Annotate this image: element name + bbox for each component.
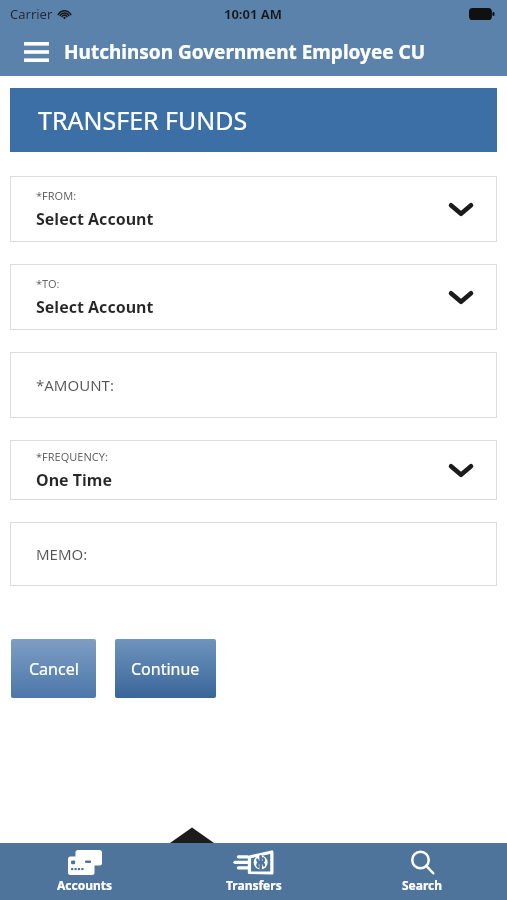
staticText: *AMOUNT: [36,375,114,395]
button[interactable]: MEMO: [10,522,497,586]
button[interactable]: *FROM: [10,176,497,242]
button[interactable]: Search [338,846,507,897]
staticText: 10:01 AM [224,5,283,23]
staticText: Continue [131,658,200,680]
button[interactable]: *AMOUNT: [10,352,497,418]
button[interactable]: *TO: [10,264,497,330]
button[interactable]: Transfers [169,846,338,897]
button[interactable]: Continue [115,639,216,698]
staticText: TRANSFER FUNDS [38,103,248,137]
staticText: One Time [36,469,112,491]
staticText: Select Account [36,296,154,318]
staticText: Cancel [29,658,79,680]
staticText: *FROM: [36,188,77,203]
staticText: Transfers [226,877,282,893]
staticText: *TO: [36,276,60,291]
staticText: Search [402,877,443,893]
staticText: *FREQUENCY: [36,449,108,464]
staticText: Hutchinson Government Employee CU [64,39,426,65]
button[interactable]: Open navigation menu [14,30,58,74]
staticText: Select Account [36,208,154,230]
button[interactable]: Cancel [11,639,96,698]
button[interactable]: Accounts [0,846,169,897]
button[interactable]: *FREQUENCY: [10,440,497,500]
staticText: MEMO: [36,544,88,564]
staticText: Accounts [57,877,113,893]
staticText: Carrier [10,5,53,23]
